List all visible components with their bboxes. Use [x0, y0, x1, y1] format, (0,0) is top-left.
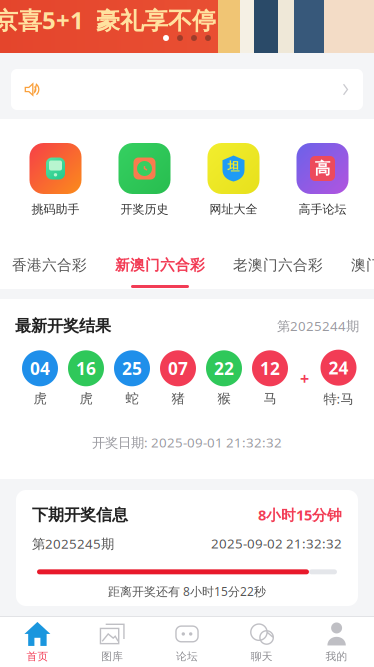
staticText: 蛇 — [125, 390, 138, 407]
button[interactable]: 新澳门六合彩 — [101, 245, 219, 289]
staticText: 25 — [122, 357, 142, 380]
button[interactable]: 香港六合彩 — [0, 245, 101, 289]
staticText: 高手论坛 — [298, 202, 346, 217]
staticText: 特:马 — [323, 390, 353, 407]
staticText: 下期开奖信息 — [32, 505, 128, 525]
staticText: 虎 — [33, 390, 46, 407]
staticText: 猪 — [171, 390, 184, 407]
staticText: + — [300, 368, 309, 389]
button[interactable]: 开奖历史 — [100, 143, 189, 217]
button[interactable]: 首页 — [0, 621, 75, 663]
button[interactable]: 高 — [278, 143, 367, 217]
button[interactable]: 聊天 — [224, 621, 299, 663]
staticText: 07 — [168, 357, 188, 380]
button[interactable]: 论坛 — [150, 621, 224, 663]
button[interactable]: 图库 — [75, 621, 150, 663]
staticText: 坦 — [227, 159, 239, 174]
button[interactable]: 坦 — [189, 143, 278, 217]
staticText: 论坛 — [176, 650, 198, 663]
staticText: 首页 — [26, 650, 48, 663]
staticText: 开奖历史 — [120, 202, 168, 217]
staticText: 12 — [260, 357, 280, 380]
button[interactable] — [0, 53, 374, 119]
button[interactable]: 挑码助手 — [11, 143, 100, 217]
staticText: 聊天 — [251, 650, 273, 663]
staticText: 马 — [263, 390, 276, 407]
staticText: 第2025245期 — [32, 535, 114, 552]
staticText: 开奖日期: 2025-09-01 21:32:32 — [92, 433, 282, 451]
staticText: 图库 — [101, 650, 123, 663]
staticText: 澳门六合彩 — [351, 256, 374, 274]
staticText: 网址大全 — [209, 202, 257, 217]
staticText: 距离开奖还有 8小时15分22秒 — [108, 583, 266, 599]
staticText: 24 — [328, 356, 348, 379]
staticText: 最新开奖结果 — [15, 316, 111, 336]
staticText: 高 — [314, 159, 330, 178]
button[interactable]: 京喜5+1 豪礼享不停 — [0, 0, 374, 53]
button[interactable]: 老澳门六合彩 — [219, 245, 337, 289]
staticText: 挑码助手 — [31, 202, 79, 217]
staticText: 新澳门六合彩 — [115, 256, 205, 274]
staticText: 猴 — [217, 390, 230, 407]
staticText: 16 — [76, 357, 96, 380]
button[interactable]: 澳门六合彩 — [337, 245, 374, 289]
staticText: 我的 — [326, 650, 348, 663]
staticText: 第2025244期 — [277, 317, 359, 335]
staticText: 2025-09-02 21:32:32 — [211, 534, 342, 552]
staticText: 虎 — [79, 390, 92, 407]
staticText: 22 — [214, 357, 234, 380]
staticText: 京喜5+1 豪礼享不停 — [0, 4, 216, 36]
button[interactable]: 我的 — [299, 621, 374, 663]
staticText: 香港六合彩 — [12, 256, 87, 274]
staticText: 04 — [30, 357, 50, 380]
staticText: 老澳门六合彩 — [233, 256, 323, 274]
staticText: 8小时15分钟 — [258, 505, 342, 524]
